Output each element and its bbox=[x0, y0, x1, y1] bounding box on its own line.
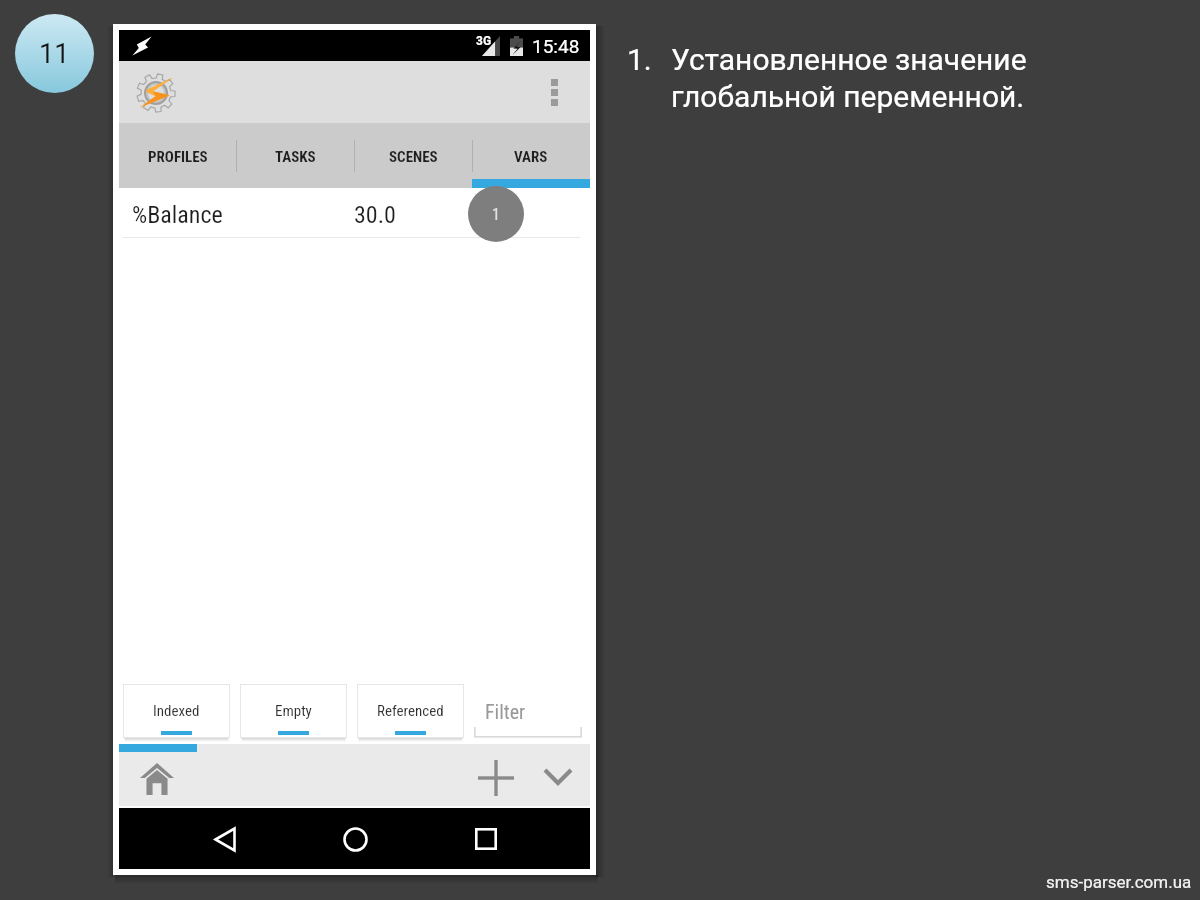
button[interactable]: Filter bbox=[474, 684, 582, 738]
staticText: SCENES bbox=[389, 148, 438, 166]
staticText: 1 bbox=[492, 205, 500, 224]
button[interactable]: Home bbox=[135, 757, 179, 801]
button[interactable]: Indexed bbox=[123, 684, 230, 738]
staticText: Empty bbox=[275, 702, 312, 720]
button[interactable]: Recents bbox=[462, 815, 510, 863]
staticText: Filter bbox=[485, 700, 526, 723]
button[interactable]: Expand bbox=[533, 751, 583, 801]
staticText: TASKS bbox=[275, 148, 316, 166]
button[interactable]: SCENES bbox=[354, 123, 472, 179]
staticText: %Balance bbox=[132, 201, 223, 229]
staticText: 30.0 bbox=[354, 201, 396, 229]
button[interactable]: Tasker bbox=[136, 73, 176, 113]
button[interactable]: TASKS bbox=[236, 123, 354, 179]
button[interactable]: Back bbox=[201, 815, 249, 863]
button[interactable]: Add bbox=[471, 753, 521, 803]
button[interactable]: Referenced bbox=[357, 684, 464, 738]
button[interactable]: 11 bbox=[15, 14, 94, 93]
staticText: 11 bbox=[39, 38, 70, 70]
button[interactable]: VARS bbox=[472, 123, 590, 179]
staticText: 1. bbox=[627, 42, 652, 77]
staticText: sms-parser.com.ua bbox=[1046, 872, 1192, 892]
button[interactable]: More options bbox=[551, 79, 558, 106]
staticText: 3G bbox=[476, 34, 492, 48]
staticText: Установленное значение глобальной переме… bbox=[671, 42, 1047, 115]
staticText: Referenced bbox=[377, 702, 444, 720]
button[interactable]: PROFILES bbox=[119, 123, 236, 179]
button[interactable]: %Balance bbox=[119, 188, 590, 237]
staticText: Indexed bbox=[153, 702, 200, 720]
button[interactable]: Home bbox=[331, 815, 379, 863]
staticText: 15:48 bbox=[532, 35, 580, 57]
button[interactable]: Empty bbox=[240, 684, 347, 738]
staticText: VARS bbox=[514, 148, 548, 166]
staticText: PROFILES bbox=[148, 148, 208, 166]
